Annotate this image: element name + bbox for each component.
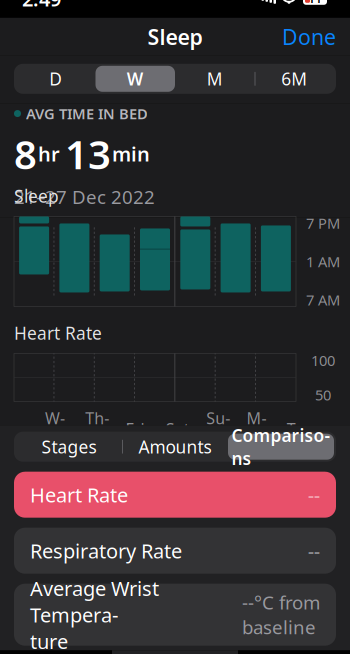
button[interactable]: Average Wrist Tempera- ture [14, 584, 336, 646]
staticText: W [127, 67, 144, 90]
staticText: Sleep [147, 23, 202, 51]
staticText: Sleep [14, 184, 59, 207]
staticText: 8 [14, 127, 37, 180]
button[interactable]: W [95, 66, 175, 92]
button[interactable]: Amounts [122, 434, 228, 460]
staticText: min [112, 141, 150, 167]
staticText: Done [282, 23, 336, 51]
button[interactable]: 6M [254, 66, 334, 92]
button[interactable]: M [175, 66, 254, 92]
button[interactable]: Comparisons [228, 434, 334, 460]
staticText: 50 [315, 385, 331, 404]
staticText: Sun [206, 407, 230, 450]
button[interactable]: Done [268, 15, 350, 59]
staticText: Amounts [138, 435, 211, 458]
staticText: Comparisons [231, 424, 330, 470]
button[interactable]: Respiratory Rate [14, 528, 336, 574]
staticText: Heart Rate [14, 321, 102, 344]
staticText: Tue [287, 418, 314, 439]
staticText: 7 PM [306, 213, 340, 233]
staticText: M [207, 67, 223, 90]
staticText: 7 AM [306, 290, 340, 309]
button[interactable]: Stages [16, 434, 122, 460]
staticText: hr [38, 141, 60, 167]
staticText: 21–27 Dec 2022 [14, 184, 155, 209]
staticText: 11 [308, 0, 322, 7]
staticText: Fri [125, 418, 144, 439]
staticText: 1 AM [306, 252, 340, 271]
staticText: 2:49 [22, 0, 61, 12]
button[interactable]: Heart Rate [14, 472, 336, 518]
staticText: Wed [45, 407, 65, 450]
staticText: 100 [311, 350, 335, 370]
staticText: -- [308, 538, 320, 563]
staticText: Thu [85, 407, 109, 450]
staticText: Mon [246, 407, 266, 450]
staticText: D [49, 67, 62, 90]
button[interactable]: D [16, 66, 95, 92]
staticText: Respiratory Rate [30, 537, 182, 564]
staticText: 6M [281, 67, 307, 90]
staticText: Stages [41, 435, 96, 458]
staticText: Sat [166, 418, 190, 439]
staticText: Average Wrist Tempera- ture [30, 575, 159, 654]
staticText: --°C from baseline [242, 590, 320, 639]
staticText: AVG TIME IN BED [26, 104, 148, 123]
staticText: Heart Rate [30, 481, 128, 508]
staticText: 13 [65, 127, 111, 180]
staticText: -- [308, 482, 320, 507]
